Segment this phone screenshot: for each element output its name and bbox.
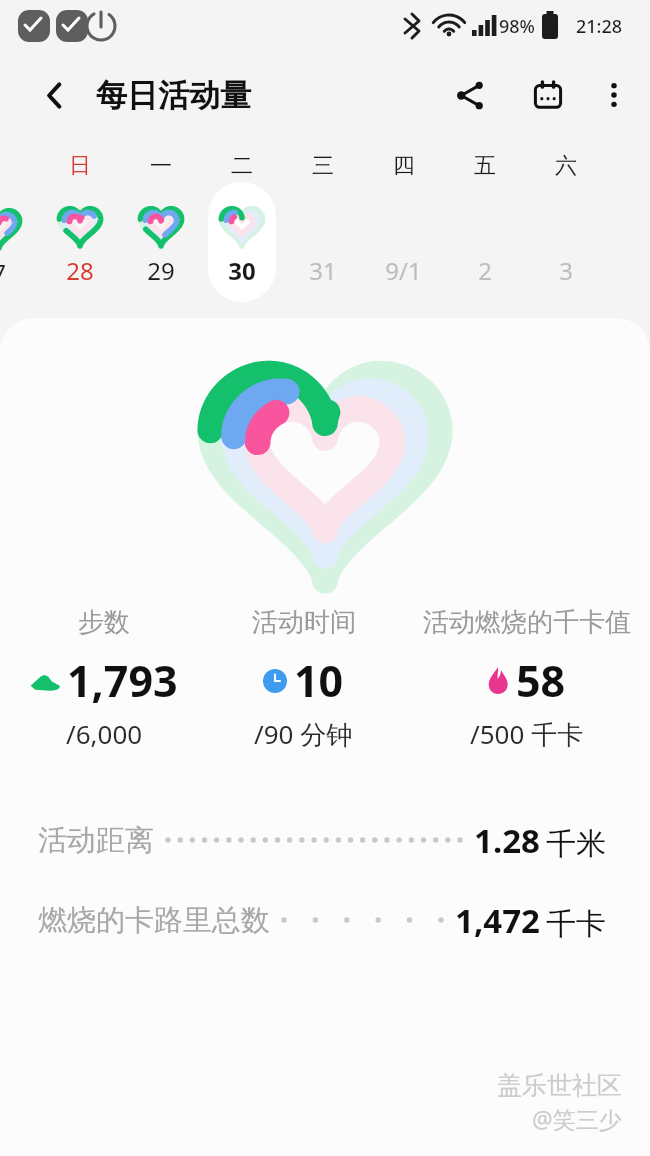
staticText: 10: [294, 651, 344, 710]
button[interactable]: 一: [120, 152, 201, 302]
staticText: 二: [231, 152, 253, 180]
staticText: 28: [66, 254, 94, 287]
button[interactable]: 六: [525, 152, 606, 302]
button[interactable]: 五: [444, 152, 525, 302]
staticText: 每日活动量: [96, 76, 251, 115]
staticText: 1,793: [67, 651, 178, 710]
button[interactable]: 四: [363, 152, 444, 302]
button[interactable]: Back: [30, 71, 78, 119]
button[interactable]: 活动时间: [204, 606, 403, 752]
button[interactable]: 活动距离: [0, 816, 650, 864]
staticText: 3: [559, 254, 573, 287]
staticText: 30: [228, 254, 256, 287]
staticText: 四: [393, 152, 415, 180]
button[interactable]: 活动燃烧的千卡值: [403, 606, 650, 752]
staticText: @笑三少: [532, 1103, 622, 1134]
staticText: 31: [309, 254, 337, 287]
staticText: /6,000: [66, 716, 143, 751]
button[interactable]: 三: [282, 152, 363, 302]
button[interactable]: More options: [586, 67, 642, 123]
staticText: 千卡: [546, 905, 606, 943]
staticText: 活动时间: [252, 606, 356, 639]
staticText: /90 分钟: [254, 716, 353, 752]
button[interactable]: 燃烧的卡路里总数: [0, 896, 650, 944]
button[interactable]: Share: [442, 67, 498, 123]
staticText: 29: [147, 254, 175, 287]
staticText: 步数: [78, 606, 130, 639]
staticText: 98%: [499, 14, 535, 39]
staticText: 燃烧的卡路里总数: [38, 902, 270, 939]
staticText: 2: [478, 254, 492, 287]
staticText: 六: [555, 152, 577, 180]
staticText: 21:28: [576, 14, 623, 39]
staticText: 58: [516, 651, 566, 710]
button[interactable]: 步数: [4, 606, 204, 751]
staticText: 活动距离: [38, 822, 154, 859]
staticText: 7: [0, 256, 6, 289]
staticText: 千米: [546, 825, 606, 863]
button[interactable]: 日: [39, 152, 120, 302]
button[interactable]: Calendar: [520, 67, 576, 123]
staticText: 1,472: [455, 898, 540, 943]
staticText: 五: [474, 152, 496, 180]
button[interactable]: 二: [201, 152, 282, 302]
staticText: 盖乐世社区: [497, 1070, 622, 1101]
staticText: 9/1: [385, 254, 422, 287]
staticText: 1.28: [474, 818, 540, 863]
staticText: 一: [150, 152, 172, 180]
staticText: 日: [69, 152, 91, 180]
staticText: 活动燃烧的千卡值: [423, 606, 631, 639]
button[interactable]: 7: [0, 152, 39, 302]
staticText: /500 千卡: [470, 716, 584, 752]
staticText: 三: [312, 152, 334, 180]
